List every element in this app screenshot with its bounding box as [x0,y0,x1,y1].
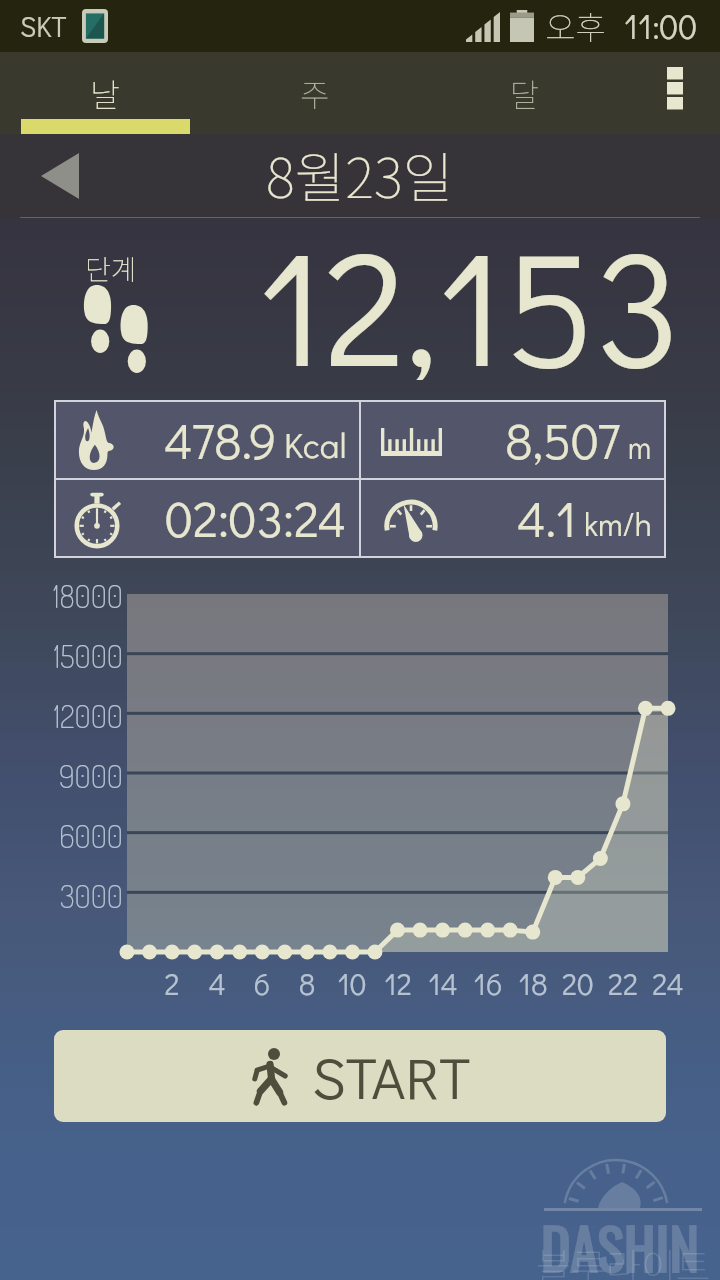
staticText: 달 [510,70,540,116]
staticText: Kcal [284,421,347,467]
staticText: 12,153 [258,198,681,380]
staticText: 10 [322,964,382,1003]
staticText: 4 [187,964,247,1003]
staticText: 14 [413,964,473,1003]
staticText: km/h [584,503,652,545]
staticText: 8,507 [505,407,621,473]
staticText: 12 [368,964,428,1003]
staticText: 날 [90,70,120,116]
staticText: SKT [20,8,67,45]
staticText: 18000 [14,576,123,615]
staticText: 15000 [14,636,123,675]
button[interactable]: 02:03:24 [56,480,359,556]
button[interactable]: 8,507 [361,402,664,478]
button[interactable]: More options [630,52,720,134]
button[interactable]: Previous day [0,134,120,218]
staticText: 22 [593,964,653,1003]
staticText: 11:00 [624,3,698,48]
staticText: 오후 [545,2,606,50]
staticText: 단계 [85,248,137,289]
staticText: 블루라이트 필터 [536,1237,720,1280]
staticText: 8 [277,964,337,1003]
button[interactable]: 날 [0,52,210,134]
staticText: 4.1 [517,485,577,551]
button[interactable]: 주 [210,52,420,134]
button[interactable]: 4.1 [361,480,664,556]
staticText: m [628,428,652,467]
staticText: 3000 [14,876,123,915]
staticText: 02:03:24 [165,485,347,551]
button[interactable]: 478.9 [56,402,359,478]
staticText: 주 [300,70,330,116]
staticText: 478.9 [164,407,277,473]
staticText: 2 [142,964,202,1003]
staticText: 8월23일 [266,134,454,214]
staticText: 6000 [14,816,123,855]
staticText: DASHIN [541,1205,699,1280]
staticText: 18 [503,964,563,1003]
staticText: START [312,1038,471,1114]
staticText: 24 [638,964,698,1003]
staticText: 6 [232,964,292,1003]
staticText: 16 [458,964,518,1003]
button[interactable]: 달 [420,52,630,134]
button[interactable]: START [54,1030,666,1122]
staticText: 20 [548,964,608,1003]
staticText: 12000 [14,696,123,735]
staticText: 9000 [14,756,123,795]
